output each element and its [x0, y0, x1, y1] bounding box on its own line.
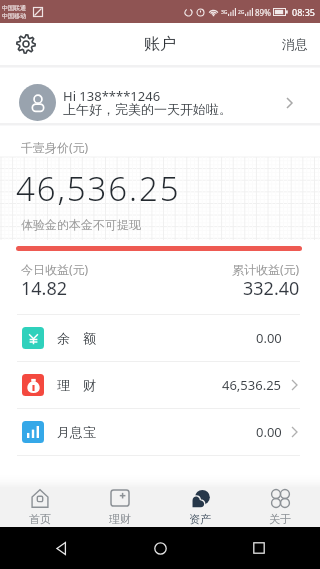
staticText: 余 额	[57, 329, 96, 347]
staticText: 中国联通	[2, 4, 26, 12]
button[interactable]: 资产	[160, 474, 240, 527]
staticText: 消息	[282, 36, 308, 52]
button[interactable]: 关于	[240, 474, 320, 527]
staticText: 46,536.25	[222, 376, 282, 394]
staticText: 3G	[221, 9, 228, 16]
staticText: 上午好，完美的一天开始啦。	[63, 101, 232, 117]
button[interactable]: 理 财	[0, 362, 320, 408]
staticText: 14.82	[21, 276, 68, 301]
button[interactable]: 消息	[270, 23, 320, 65]
button[interactable]: 设置	[6, 23, 46, 65]
staticText: 0.00	[256, 423, 282, 441]
staticText: 账户	[144, 34, 176, 54]
button[interactable]: 月息宝	[0, 409, 320, 455]
button[interactable]: 首页	[0, 474, 80, 527]
staticText: 关于	[269, 512, 291, 526]
staticText: 中国移动	[2, 12, 26, 20]
staticText: 月息宝	[57, 424, 96, 440]
staticText: 首页	[29, 512, 51, 526]
button[interactable]: Hi 138****1246	[0, 66, 320, 130]
staticText: 理财	[109, 512, 131, 526]
staticText: 千壹身价(元)	[21, 139, 89, 155]
staticText: 体验金的本金不可提现	[21, 217, 141, 232]
staticText: 89%	[255, 7, 271, 18]
other: Recents	[253, 542, 265, 554]
staticText: 累计收益(元)	[232, 261, 300, 277]
staticText: 46,536.25	[16, 166, 181, 211]
staticText: 今日收益(元)	[21, 261, 89, 277]
other: Back	[55, 542, 68, 555]
button[interactable]: 余 额	[0, 315, 320, 361]
staticText: 0.00	[256, 329, 282, 347]
staticText: 资产	[189, 512, 211, 526]
staticText: 332.40	[243, 276, 300, 301]
staticText: 08:35	[292, 6, 316, 18]
staticText: 2G	[238, 9, 245, 16]
other: Home	[154, 542, 167, 555]
button[interactable]: 理财	[80, 474, 160, 527]
staticText: 理 财	[57, 376, 96, 394]
staticText: Hi 138****1246	[63, 87, 161, 105]
